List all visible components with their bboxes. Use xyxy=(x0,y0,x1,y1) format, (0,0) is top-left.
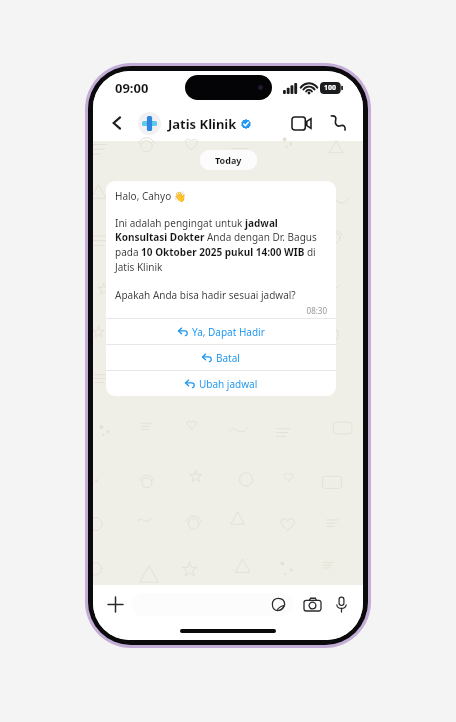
staticText: Ubah jadwal xyxy=(199,377,258,391)
button[interactable]: Voice call xyxy=(325,110,351,136)
button[interactable]: Ubah jadwal xyxy=(106,370,336,396)
button[interactable] xyxy=(132,593,293,616)
staticText: Ini adalah pengingat untuk jadwal Konsul… xyxy=(115,216,327,274)
staticText: 08:30 xyxy=(115,305,327,316)
staticText: Ya, Dapat Hadir xyxy=(192,325,265,339)
staticText: Jatis Klinik xyxy=(168,115,237,133)
button[interactable]: Jatis Klinik xyxy=(138,112,251,135)
staticText: 100 xyxy=(324,83,337,93)
button[interactable]: Ya, Dapat Hadir xyxy=(106,318,336,344)
staticText: Batal xyxy=(216,351,240,365)
button[interactable]: Camera xyxy=(300,592,324,616)
staticText: Halo, Cahyo 👋 xyxy=(115,189,187,203)
staticText: Today xyxy=(215,154,242,166)
button[interactable]: Voice message xyxy=(329,592,353,616)
staticText: Apakah Anda bisa hadir sesuai jadwal? xyxy=(115,288,296,302)
staticText: 09:00 xyxy=(115,79,149,97)
button[interactable]: Video call xyxy=(288,110,314,136)
button[interactable]: Back xyxy=(105,111,129,135)
button[interactable]: Attach xyxy=(103,592,127,616)
button[interactable]: Batal xyxy=(106,344,336,370)
